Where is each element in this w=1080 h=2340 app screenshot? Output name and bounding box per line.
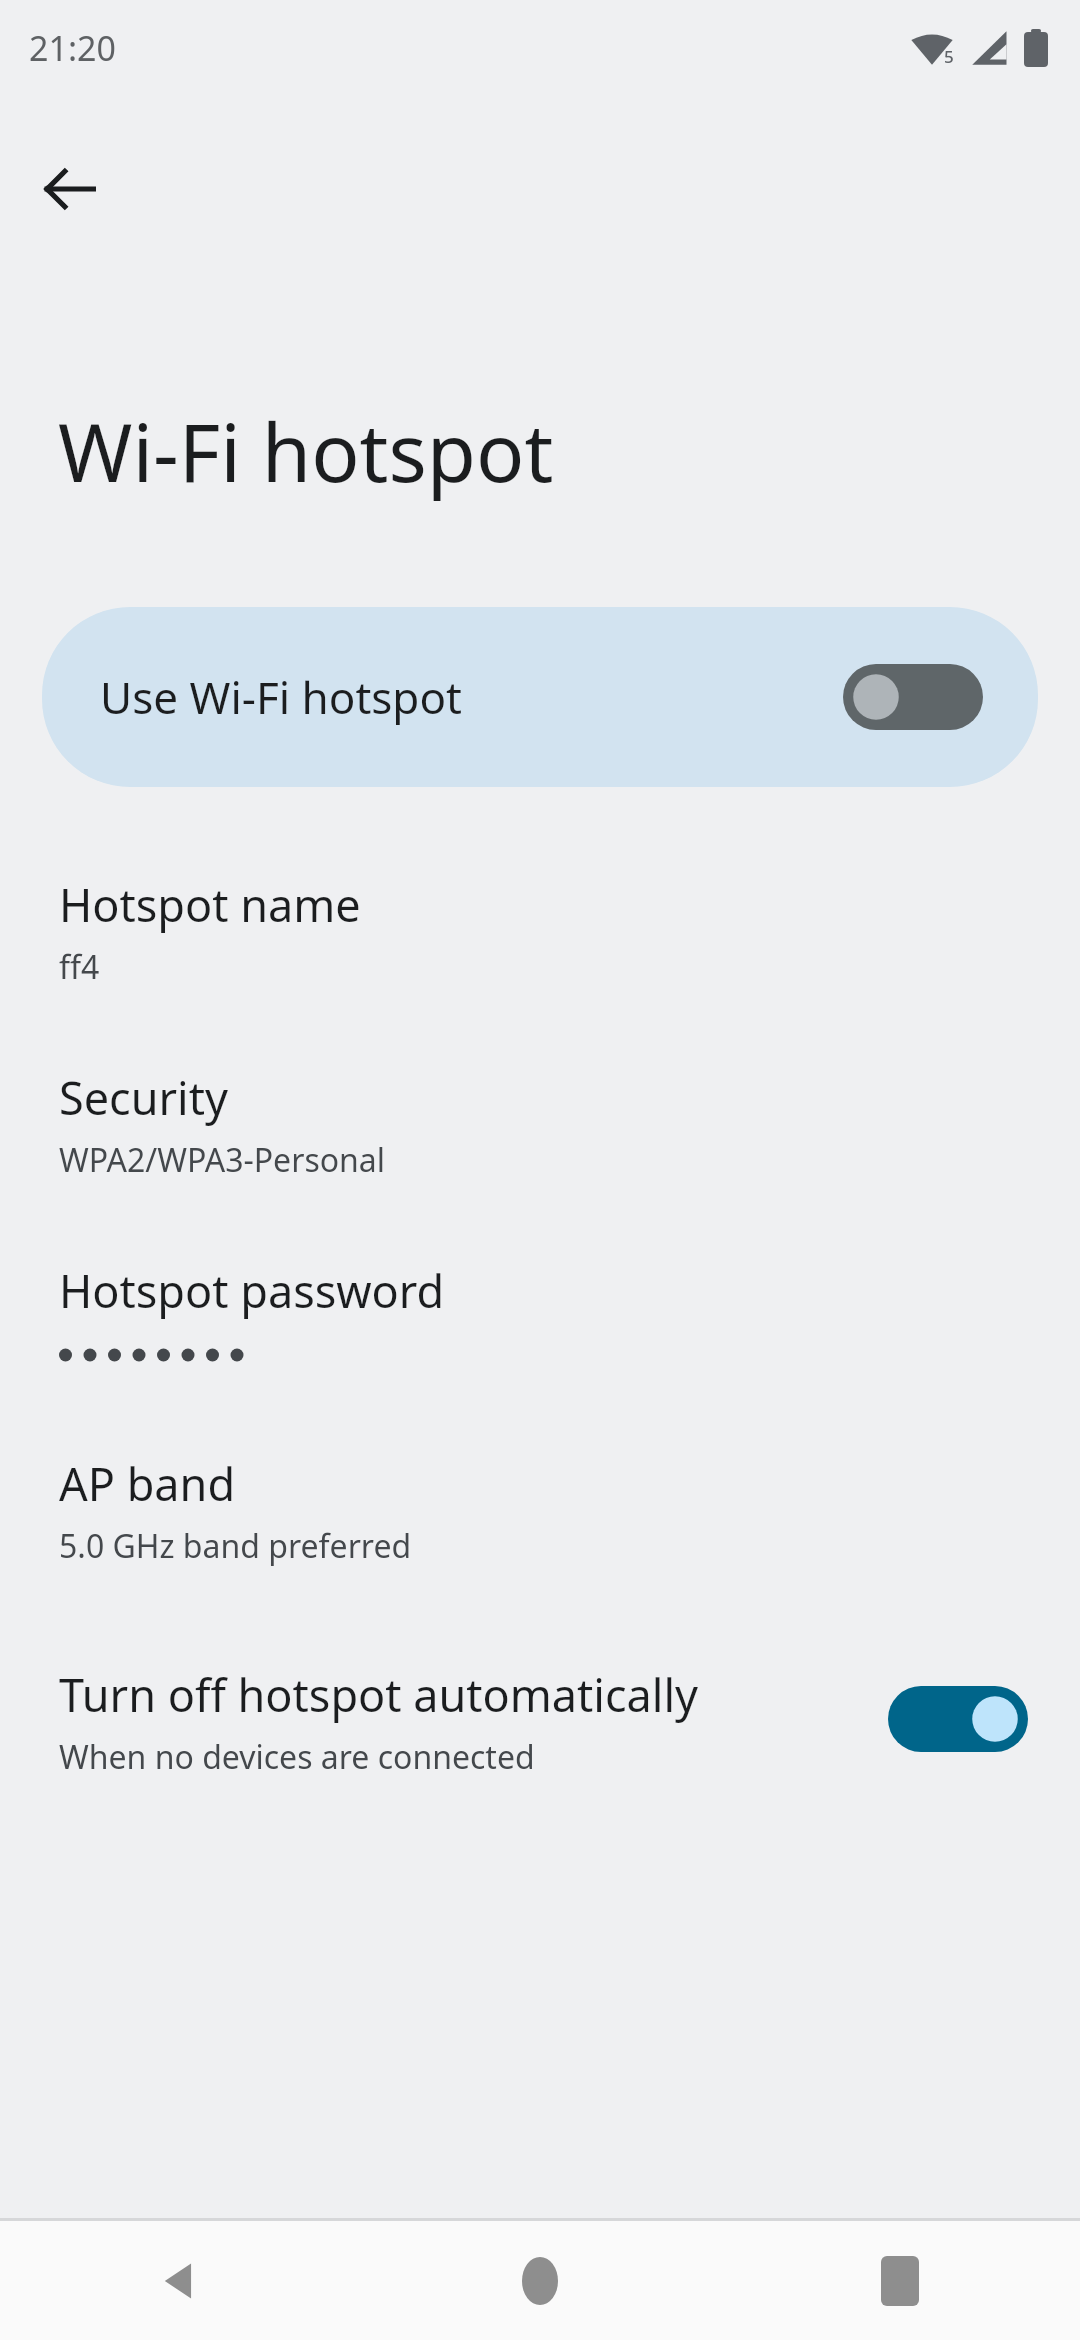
button[interactable]: Home [360,2221,720,2340]
button[interactable]: AP band [0,1429,1080,1622]
button[interactable]: Toggle off [843,664,983,730]
staticText: Wi-Fi hotspot [58,396,554,505]
staticText: ff4 [59,945,100,989]
button[interactable]: Security [0,1043,1080,1236]
button[interactable]: Back [0,2221,360,2340]
staticText: 5 [944,45,954,68]
staticText: Security [59,1067,228,1128]
staticText: When no devices are connected [59,1735,535,1779]
staticText: AP band [59,1453,236,1514]
button[interactable]: Hotspot name [0,850,1080,1043]
staticText: 21:20 [29,25,116,71]
button[interactable]: Toggle on [888,1686,1028,1752]
button[interactable]: Recent apps [720,2221,1080,2340]
staticText: WPA2/WPA3-Personal [59,1138,386,1182]
button[interactable]: Hotspot password [0,1236,1080,1429]
button[interactable]: Turn off hotspot automatically [0,1622,1080,1815]
button[interactable]: Use Wi-Fi hotspot [42,607,1038,787]
button[interactable]: Back [22,141,118,237]
staticText: Use Wi-Fi hotspot [100,667,843,727]
staticText: Hotspot name [59,874,361,935]
staticText: Turn off hotspot automatically [59,1664,698,1725]
staticText: Hotspot password [59,1260,445,1321]
staticText: 5.0 GHz band preferred [59,1524,412,1568]
